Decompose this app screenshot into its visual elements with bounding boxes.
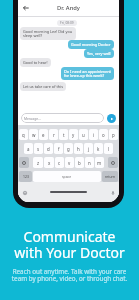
button[interactable]: w — [29, 129, 38, 140]
staticText: Good morning Doctor — [71, 42, 111, 47]
staticText: j — [88, 146, 90, 152]
button[interactable]: b — [75, 157, 84, 168]
button[interactable]: f — [54, 143, 63, 154]
button[interactable]: p — [109, 129, 118, 140]
staticText: Let us take care of this — [23, 84, 63, 89]
staticText: space — [62, 174, 72, 179]
button[interactable]: Voice input — [108, 188, 117, 197]
button[interactable]: g — [64, 143, 73, 154]
button[interactable]: q — [19, 129, 28, 140]
button[interactable]: o — [99, 129, 108, 140]
staticText: q — [22, 132, 25, 138]
button[interactable]: space — [33, 171, 101, 182]
button[interactable]: Let us take care of this — [23, 84, 63, 89]
button[interactable]: e — [39, 129, 48, 140]
staticText: Communicate with Your Doctor — [1, 227, 138, 262]
button[interactable]: Good morning Doctor — [71, 42, 111, 47]
staticText: Good morning Lee! Did you sleep well? — [23, 29, 73, 38]
staticText: p — [112, 132, 115, 138]
button[interactable]: c — [55, 157, 64, 168]
button[interactable]: i — [89, 129, 98, 140]
button[interactable]: a — [24, 143, 33, 154]
staticText: Message... — [24, 116, 41, 121]
staticText: x — [48, 160, 51, 166]
staticText: u — [82, 132, 85, 138]
staticText: b — [78, 160, 81, 166]
staticText: i — [93, 132, 95, 138]
staticText: c — [58, 160, 61, 166]
button[interactable]: r — [49, 129, 58, 140]
button[interactable]: n — [85, 157, 94, 168]
staticText: r — [53, 132, 55, 138]
staticText: k — [97, 146, 100, 152]
staticText: f — [58, 146, 60, 152]
button[interactable]: Message... — [24, 113, 104, 123]
staticText: Good to hear! — [23, 60, 48, 65]
button[interactable]: z — [33, 157, 43, 168]
staticText: l — [108, 146, 110, 152]
button[interactable]: s — [34, 143, 43, 154]
staticText: z — [37, 160, 40, 166]
staticText: t — [63, 132, 65, 138]
button[interactable]: h — [74, 143, 83, 154]
button[interactable]: Return — [102, 171, 118, 182]
button[interactable]: Backspace — [108, 157, 118, 168]
button[interactable]: Numbers — [19, 171, 32, 182]
button[interactable]: y — [69, 129, 78, 140]
staticText: Yes, very well — [87, 51, 111, 56]
staticText: w — [32, 132, 36, 138]
button[interactable]: v — [65, 157, 74, 168]
staticText: g — [67, 146, 70, 152]
staticText: s — [37, 146, 40, 152]
staticText: Fri, 08:09 — [60, 21, 74, 25]
button[interactable]: Yes, very well — [87, 51, 111, 56]
button[interactable]: m — [95, 157, 104, 168]
staticText: h — [77, 146, 80, 152]
button[interactable]: Do I need an appointment for knee-up thi… — [64, 69, 111, 78]
staticText: n — [88, 160, 91, 166]
button[interactable]: Shift — [19, 157, 29, 168]
staticText: Dr. Andy — [57, 4, 80, 12]
button[interactable]: k — [94, 143, 103, 154]
staticText: y — [72, 132, 75, 138]
button[interactable]: Good morning Lee! Did you sleep well? — [23, 29, 73, 38]
staticText: Reach out anytime. Talk with your care t… — [1, 267, 138, 283]
button[interactable]: x — [44, 157, 54, 168]
button[interactable]: j — [84, 143, 93, 154]
button[interactable]: Send — [107, 114, 116, 123]
staticText: d — [47, 146, 50, 152]
button[interactable]: Emoji — [20, 188, 29, 197]
button[interactable]: Good to hear! — [23, 60, 48, 65]
staticText: a — [27, 146, 30, 152]
staticText: 123 — [23, 174, 29, 179]
staticText: Do I need an appointment for knee-up thi… — [64, 69, 111, 78]
button[interactable]: d — [44, 143, 53, 154]
staticText: v — [68, 160, 71, 166]
button[interactable]: u — [79, 129, 88, 140]
button[interactable]: Back — [18, 0, 34, 16]
button[interactable]: l — [104, 143, 113, 154]
staticText: m — [97, 160, 102, 166]
staticText: o — [102, 132, 105, 138]
button[interactable]: t — [59, 129, 68, 140]
staticText: return — [105, 174, 116, 179]
staticText: e — [42, 132, 45, 138]
